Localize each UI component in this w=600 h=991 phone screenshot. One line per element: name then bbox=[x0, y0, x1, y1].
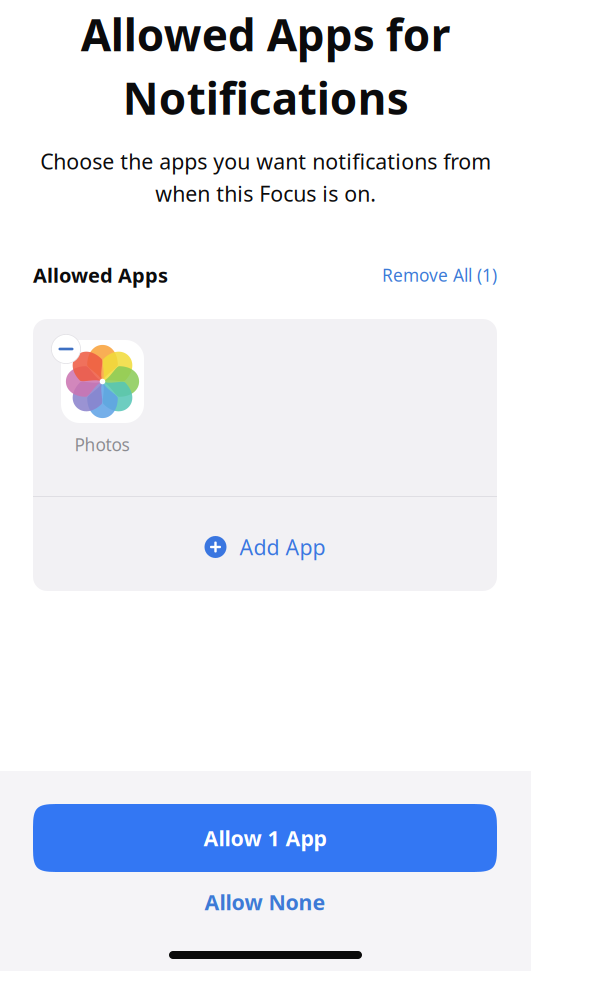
staticText: Allowed Apps bbox=[33, 262, 168, 288]
staticText: Allow None bbox=[204, 888, 325, 916]
staticText: Allowed Apps for Notifications bbox=[80, 5, 450, 127]
staticText: Allow 1 App bbox=[203, 824, 326, 852]
button[interactable]: Add App bbox=[33, 500, 497, 594]
button[interactable]: Remove All (1) bbox=[382, 263, 497, 286]
button[interactable]: Allow None bbox=[33, 881, 497, 923]
staticText: Photos bbox=[74, 433, 129, 456]
button[interactable]: Remove Photos bbox=[51, 334, 81, 364]
staticText: Add App bbox=[239, 533, 325, 561]
staticText: Choose the apps you want notifications f… bbox=[40, 147, 491, 208]
button[interactable]: Allow 1 App bbox=[33, 804, 497, 872]
staticText: Remove All (1) bbox=[382, 263, 497, 286]
